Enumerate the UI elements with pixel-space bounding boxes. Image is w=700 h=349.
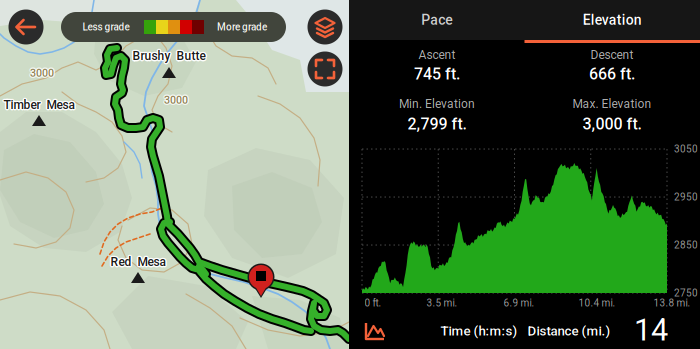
staticText: 3.5 mi. bbox=[426, 297, 457, 309]
staticText: 2950 bbox=[674, 191, 698, 203]
staticText: 3000 bbox=[29, 67, 53, 79]
staticText: Time (h:m:s) bbox=[440, 323, 517, 339]
button[interactable]: Grade scale bbox=[61, 12, 293, 42]
staticText: Red Mesa bbox=[109, 255, 164, 269]
staticText: Timber Mesa bbox=[3, 98, 74, 112]
staticText: Elevation bbox=[583, 12, 642, 28]
staticText: 3000 bbox=[31, 67, 55, 79]
staticText: Brushy Butte bbox=[133, 48, 206, 62]
staticText: 3000 bbox=[163, 94, 187, 106]
staticText: Timber Mesa bbox=[4, 97, 75, 111]
staticText: 3000 bbox=[165, 93, 189, 105]
staticText: 10.4 mi. bbox=[578, 297, 615, 309]
button[interactable]: Elevation bbox=[524, 0, 700, 40]
staticText: Timber Mesa bbox=[4, 99, 75, 113]
staticText: Red Mesa bbox=[112, 255, 167, 269]
staticText: Less grade bbox=[82, 21, 129, 33]
staticText: 2850 bbox=[674, 239, 698, 251]
staticText: Timber Mesa bbox=[3, 97, 74, 111]
staticText: Red Mesa bbox=[111, 256, 166, 270]
staticText: Min. Elevation bbox=[399, 97, 475, 111]
staticText: 3000 bbox=[165, 94, 189, 106]
staticText: Brushy Butte bbox=[131, 49, 204, 63]
staticText: Pace bbox=[421, 12, 452, 28]
staticText: 0 ft. bbox=[364, 297, 381, 309]
staticText: 14 bbox=[634, 312, 668, 348]
button[interactable]: Full screen bbox=[307, 51, 342, 86]
staticText: 3000 bbox=[165, 95, 189, 107]
staticText: More grade bbox=[217, 21, 267, 33]
staticText: Brushy Butte bbox=[132, 50, 205, 64]
staticText: 3,000 ft. bbox=[582, 115, 641, 133]
staticText: 3000 bbox=[30, 65, 54, 78]
staticText: 3000 bbox=[31, 66, 55, 78]
staticText: Distance (mi.) bbox=[527, 323, 610, 339]
staticText: 13.8 mi. bbox=[653, 297, 690, 309]
staticText: 6.9 mi. bbox=[503, 297, 534, 309]
button[interactable]: Pace bbox=[349, 0, 524, 40]
staticText: Brushy Butte bbox=[131, 50, 204, 64]
staticText: Red Mesa bbox=[109, 254, 164, 268]
staticText: 666 ft. bbox=[589, 65, 635, 83]
button[interactable]: Back bbox=[8, 9, 43, 44]
staticText: Brushy Butte bbox=[134, 49, 207, 63]
staticText: 3000 bbox=[29, 68, 53, 80]
staticText: Red Mesa bbox=[110, 254, 165, 268]
staticText: Brushy Butte bbox=[132, 48, 205, 62]
staticText: Timber Mesa bbox=[2, 97, 73, 111]
staticText: Brushy Butte bbox=[131, 48, 204, 62]
staticText: Max. Elevation bbox=[572, 97, 651, 111]
staticText: 3000 bbox=[31, 68, 55, 80]
staticText: 3000 bbox=[29, 66, 53, 78]
staticText: Red Mesa bbox=[110, 256, 165, 270]
staticText: 3000 bbox=[30, 68, 54, 81]
staticText: 745 ft. bbox=[414, 65, 460, 83]
staticText: 3000 bbox=[163, 93, 187, 105]
staticText: Timber Mesa bbox=[2, 99, 73, 113]
staticText: 3050 bbox=[674, 143, 698, 155]
staticText: 3000 bbox=[164, 94, 188, 106]
staticText: Red Mesa bbox=[110, 255, 165, 269]
staticText: Red Mesa bbox=[111, 254, 166, 268]
staticText: Timber Mesa bbox=[3, 99, 74, 113]
staticText: Descent bbox=[590, 48, 633, 62]
staticText: 2,799 ft. bbox=[407, 115, 466, 133]
staticText: Brushy Butte bbox=[133, 50, 206, 64]
staticText: 3000 bbox=[164, 95, 188, 108]
staticText: Ascent bbox=[418, 48, 455, 62]
staticText: 2750 bbox=[674, 287, 698, 299]
staticText: 3000 bbox=[164, 92, 188, 105]
staticText: Brushy Butte bbox=[132, 49, 205, 63]
staticText: 3000 bbox=[30, 67, 54, 79]
staticText: 3000 bbox=[163, 95, 187, 107]
staticText: Timber Mesa bbox=[2, 98, 73, 112]
staticText: Red Mesa bbox=[109, 256, 164, 270]
button[interactable]: Chart type bbox=[357, 317, 391, 347]
staticText: Timber Mesa bbox=[5, 98, 76, 112]
button[interactable]: Map layers bbox=[307, 9, 342, 44]
